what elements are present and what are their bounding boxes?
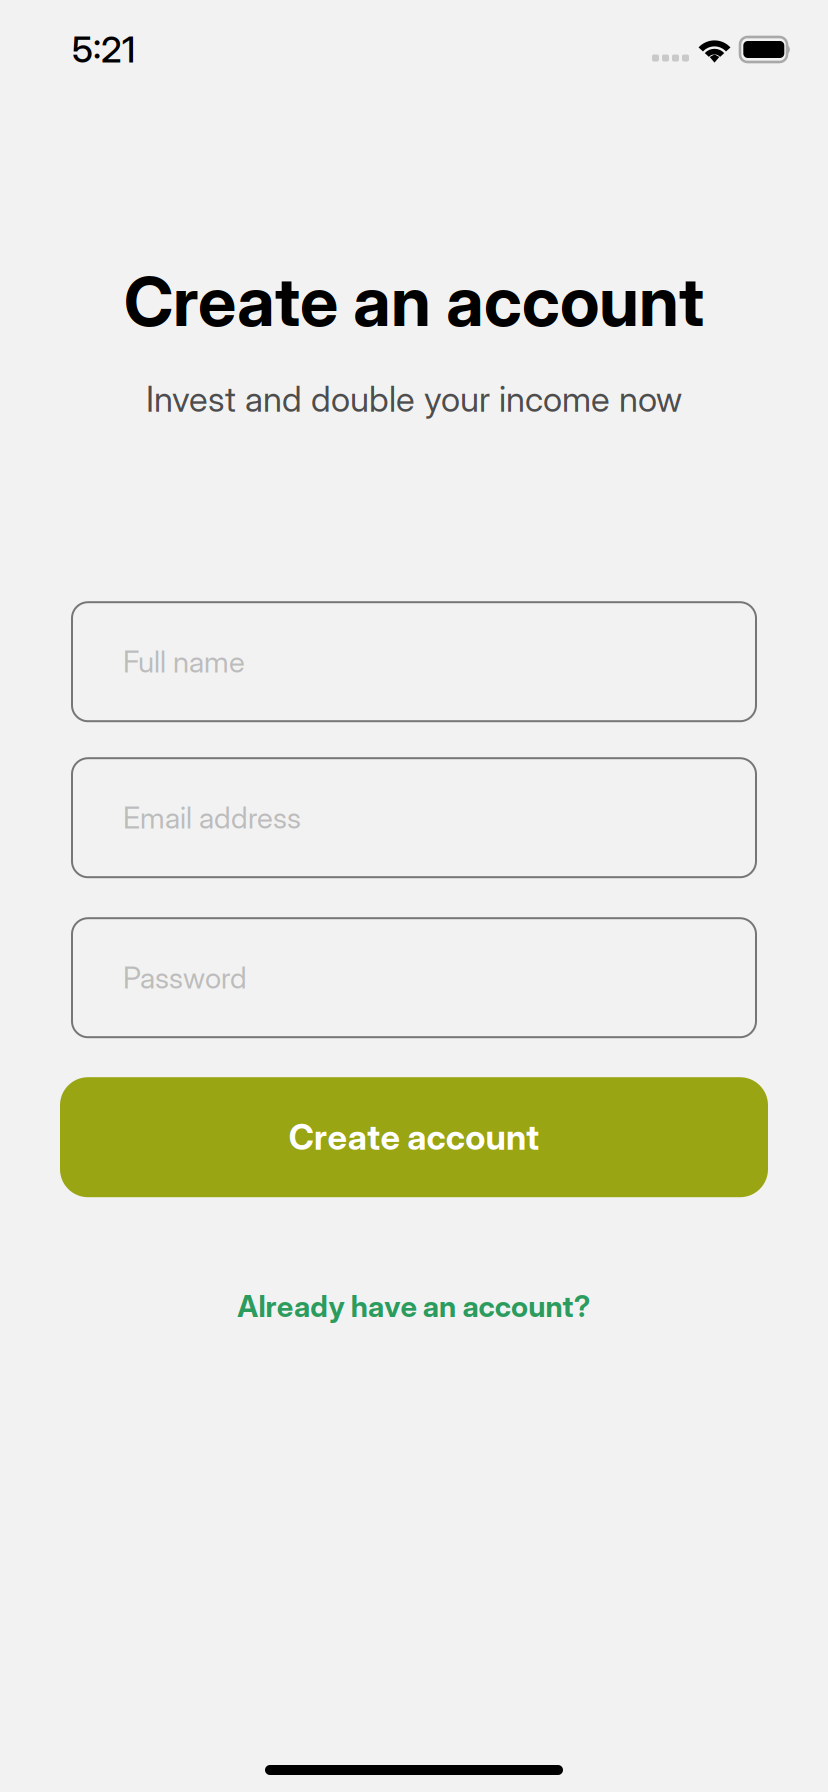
staticText: Create account bbox=[289, 1116, 539, 1158]
staticText: Already have an account? bbox=[237, 1288, 591, 1324]
button[interactable]: Email address bbox=[72, 758, 756, 877]
staticText: Password bbox=[123, 960, 247, 995]
button[interactable]: Already have an account? bbox=[184, 1282, 644, 1330]
button[interactable]: Full name bbox=[72, 602, 756, 721]
staticText: Email address bbox=[123, 800, 301, 835]
staticText: Full name bbox=[123, 644, 245, 679]
staticText: Create an account bbox=[124, 260, 704, 342]
staticText: 5:21 bbox=[72, 28, 135, 71]
button[interactable]: Create account bbox=[60, 1077, 768, 1197]
staticText: Invest and double your income now bbox=[146, 378, 682, 420]
button[interactable]: Password bbox=[72, 918, 756, 1037]
